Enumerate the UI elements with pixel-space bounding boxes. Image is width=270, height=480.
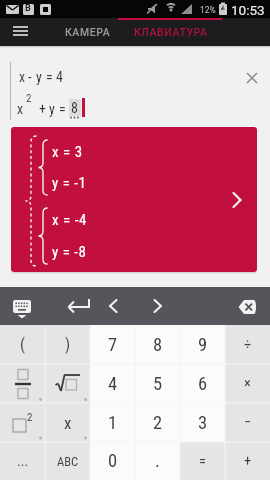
button[interactable]: = — [180, 442, 225, 480]
staticText: 4 — [56, 69, 63, 85]
button[interactable]: × — [225, 364, 270, 403]
staticText: ) — [65, 335, 71, 354]
button[interactable]: 5 — [135, 364, 180, 403]
button[interactable]: 0 — [90, 442, 135, 480]
button[interactable]: 4 — [90, 364, 135, 403]
button[interactable]: x — [45, 403, 90, 442]
staticText: 0 — [108, 450, 118, 472]
button[interactable]: + — [225, 442, 270, 480]
button[interactable] — [242, 68, 262, 88]
button[interactable]: 3 — [180, 403, 225, 442]
staticText: - — [28, 69, 32, 85]
staticText: 12% — [200, 5, 216, 15]
staticText: ( — [20, 335, 26, 354]
button[interactable] — [0, 364, 45, 403]
button[interactable]: КЛАВИАТУРА — [121, 18, 221, 46]
staticText: + — [39, 101, 46, 117]
staticText: = — [46, 69, 53, 85]
staticText: КАМЕРА — [65, 26, 111, 38]
button[interactable]: 2 — [0, 403, 45, 442]
staticText: × — [244, 375, 251, 392]
button[interactable]: 1 — [90, 403, 135, 442]
staticText: x — [64, 413, 72, 433]
staticText: 8 — [153, 334, 163, 356]
button[interactable]: 9 — [180, 325, 225, 364]
staticText: 8 — [71, 100, 78, 116]
button[interactable]: КАМЕРА — [55, 18, 121, 46]
staticText: 6 — [198, 373, 208, 395]
staticText: = — [199, 453, 206, 470]
staticText: 1 — [108, 412, 118, 434]
staticText: y = -8 — [52, 243, 87, 261]
staticText: y — [36, 69, 42, 85]
button[interactable]: ... — [0, 442, 45, 480]
button[interactable]: 6 — [180, 364, 225, 403]
staticText: x = -4 — [52, 211, 87, 229]
button[interactable]: ( — [0, 325, 45, 364]
button[interactable] — [232, 293, 262, 319]
button[interactable]: 7 — [90, 325, 135, 364]
staticText: 10:53 — [231, 2, 265, 18]
button[interactable]: ABC — [45, 442, 90, 480]
staticText: 4 — [108, 373, 118, 395]
staticText: x — [17, 101, 24, 117]
staticText: 5 — [153, 373, 163, 395]
staticText: 7 — [108, 334, 118, 356]
staticText: . — [155, 450, 160, 472]
staticText: x = 3 — [52, 143, 83, 161]
staticText: 2 — [153, 412, 163, 434]
button[interactable]: x = 3 — [11, 127, 257, 272]
staticText: 2 — [26, 92, 32, 105]
staticText: ÷ — [244, 336, 252, 353]
staticText: − — [244, 414, 252, 431]
staticText: B — [25, 3, 31, 14]
button[interactable] — [100, 293, 126, 319]
button[interactable] — [144, 293, 170, 319]
staticText: ... — [17, 453, 29, 469]
staticText: = — [59, 101, 66, 117]
staticText: КЛАВИАТУРА — [134, 26, 208, 38]
staticText: 9 — [198, 334, 208, 356]
button[interactable]: 8 — [135, 325, 180, 364]
staticText: y — [49, 101, 55, 117]
button[interactable] — [6, 20, 36, 44]
button[interactable]: − — [225, 403, 270, 442]
staticText: x — [19, 69, 26, 85]
button[interactable] — [64, 293, 94, 319]
button[interactable]: . — [135, 442, 180, 480]
staticText: + — [244, 453, 252, 470]
button[interactable] — [2, 293, 42, 321]
button[interactable]: ÷ — [225, 325, 270, 364]
staticText: ABC — [57, 454, 79, 469]
button[interactable] — [45, 364, 90, 403]
staticText: 3 — [198, 412, 208, 434]
staticText: y = -1 — [52, 174, 87, 192]
staticText: 2 — [27, 411, 33, 424]
button[interactable]: 2 — [135, 403, 180, 442]
button[interactable]: ) — [45, 325, 90, 364]
